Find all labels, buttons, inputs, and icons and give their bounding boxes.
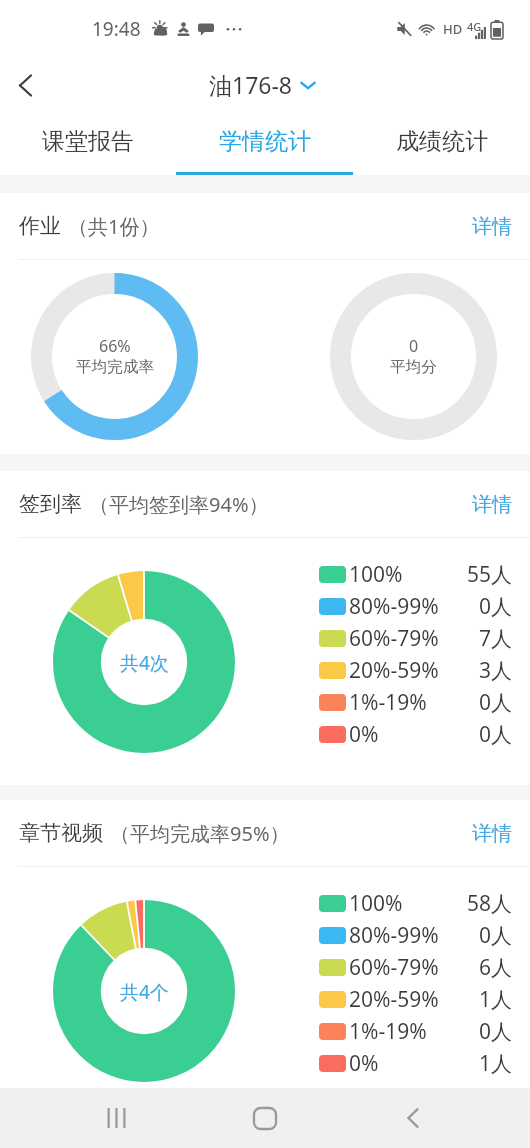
staticText: （平均签到率94%） [89,491,269,518]
button[interactable]: Recent apps [72,1088,160,1148]
staticText: 平均完成率 [76,357,154,377]
staticText: 共4个 [120,979,169,1005]
staticText: 0人 [479,720,513,749]
button[interactable]: 成绩统计 [353,116,530,175]
staticText: 1人 [479,1049,513,1078]
staticText: 1%-19% [349,688,427,717]
staticText: 0人 [479,688,513,717]
staticText: （共1份） [68,213,160,240]
staticText: 0% [349,1049,379,1078]
button[interactable]: Back [2,61,50,109]
staticText: 6人 [479,953,513,982]
staticText: 0% [349,720,379,749]
staticText: 详情 [472,214,512,239]
staticText: 1%-19% [349,1017,427,1046]
staticText: 详情 [472,492,512,517]
staticText: 0人 [479,592,513,621]
staticText: 1人 [479,985,513,1014]
button[interactable]: 详情 [472,214,512,239]
staticText: 详情 [472,821,512,846]
button[interactable]: 详情 [472,492,512,517]
staticText: 80%-99% [349,921,439,950]
staticText: 共4次 [120,650,169,676]
staticText: 66% [99,335,131,357]
staticText: 课堂报告 [42,127,134,156]
button[interactable]: 课堂报告 [0,116,176,175]
staticText: 7人 [479,624,513,653]
staticText: 58人 [467,889,513,918]
staticText: 油176-8 [209,69,293,100]
staticText: 100% [349,889,403,918]
staticText: 4G [467,19,482,34]
staticText: 60%-79% [349,953,439,982]
staticText: 3人 [479,656,513,685]
staticText: HD [443,20,463,38]
staticText: 80%-99% [349,592,439,621]
staticText: 成绩统计 [396,127,488,156]
button[interactable]: 学情统计 [176,116,353,175]
staticText: 作业 [19,213,61,239]
staticText: 0人 [479,1017,513,1046]
staticText: 0 [409,335,419,357]
staticText: （平均完成率95%） [110,820,290,847]
staticText: 章节视频 [19,820,103,846]
staticText: 0人 [479,921,513,950]
staticText: 55人 [467,560,513,589]
staticText: 平均分 [390,357,437,377]
staticText: 100% [349,560,403,589]
staticText: 20%-59% [349,985,439,1014]
staticText: 19:48 [92,16,141,42]
button[interactable]: 油176-8 [203,69,322,100]
staticText: 60%-79% [349,624,439,653]
staticText: 签到率 [19,491,82,517]
button[interactable]: 详情 [472,821,512,846]
button[interactable]: Back [369,1088,457,1148]
button[interactable]: Home [221,1088,309,1148]
staticText: 20%-59% [349,656,439,685]
staticText: 学情统计 [219,127,311,156]
